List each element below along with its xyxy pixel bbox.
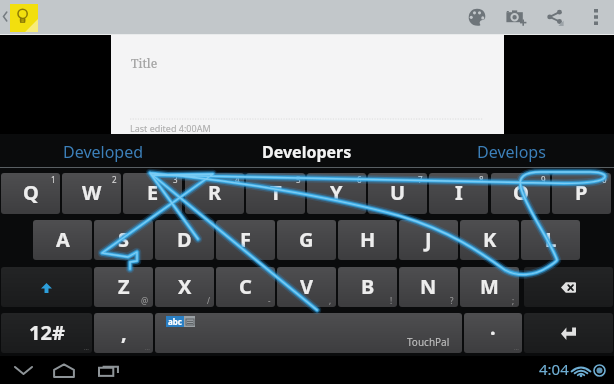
button[interactable]: H xyxy=(338,220,397,260)
staticText: ; xyxy=(512,295,515,306)
staticText: 6 xyxy=(357,174,362,185)
staticText: X xyxy=(178,273,192,300)
button[interactable]: M xyxy=(460,267,519,307)
staticText: D xyxy=(177,226,192,253)
button[interactable]: F xyxy=(216,220,275,260)
staticText: O xyxy=(513,179,529,206)
button[interactable]: B xyxy=(338,267,397,307)
staticText: abc xyxy=(168,316,182,327)
staticText: 4 xyxy=(235,174,240,185)
button[interactable]: More options xyxy=(582,0,610,33)
staticText: Developed xyxy=(63,141,144,163)
staticText: 3 xyxy=(173,174,178,185)
button[interactable]: J xyxy=(399,220,458,260)
staticText: L xyxy=(545,226,557,253)
button[interactable]: Developed xyxy=(3,134,203,167)
button[interactable]: space xyxy=(155,313,462,353)
button[interactable]: Q xyxy=(1,173,60,214)
button[interactable]: R xyxy=(185,173,244,214)
button[interactable]: A xyxy=(33,220,92,260)
staticText: R xyxy=(208,179,222,206)
staticText: ··· xyxy=(84,345,89,353)
button[interactable]: Hide keyboard xyxy=(6,356,40,384)
button[interactable]: Change color xyxy=(461,0,493,33)
button[interactable]: Navigate up xyxy=(0,0,10,33)
staticText: 4:04 xyxy=(539,359,569,379)
button[interactable]: O xyxy=(491,173,550,214)
button[interactable]: W xyxy=(62,173,121,214)
staticText: 7 xyxy=(418,174,423,185)
button[interactable]: Recent apps xyxy=(91,356,125,384)
button[interactable]: enter xyxy=(524,313,613,353)
staticText: , xyxy=(121,319,127,346)
staticText: H xyxy=(360,226,376,253)
button[interactable]: L xyxy=(521,220,580,260)
staticText: Q xyxy=(23,179,39,206)
button[interactable]: U xyxy=(368,173,427,214)
staticText: K xyxy=(483,226,497,253)
staticText: 1 xyxy=(51,174,56,185)
button[interactable]: D xyxy=(155,220,214,260)
staticText: V xyxy=(300,273,313,300)
staticText: F xyxy=(240,226,251,253)
button[interactable]: N xyxy=(399,267,458,307)
staticText: Z xyxy=(118,273,130,300)
button[interactable]: G xyxy=(277,220,336,260)
button[interactable]: Y xyxy=(307,173,366,214)
staticText: 0 xyxy=(602,174,607,185)
button[interactable]: 12# xyxy=(1,313,92,353)
staticText: U xyxy=(390,179,406,206)
staticText: T xyxy=(270,179,282,206)
staticText: N xyxy=(420,273,437,300)
button[interactable]: V xyxy=(277,267,336,307)
button[interactable]: E xyxy=(123,173,182,214)
staticText: C xyxy=(239,273,252,300)
button[interactable]: Share xyxy=(538,0,570,33)
staticText: Last edited 4:00AM xyxy=(130,122,211,134)
staticText: W xyxy=(82,179,102,206)
button[interactable]: Z xyxy=(94,267,153,307)
staticText: ··· xyxy=(145,345,150,353)
button[interactable]: Developers xyxy=(207,134,406,167)
staticText: J xyxy=(425,226,432,253)
button[interactable]: T xyxy=(246,173,305,214)
staticText: G xyxy=(299,226,314,253)
staticText: M xyxy=(480,273,499,300)
button[interactable]: back xyxy=(524,267,613,307)
button[interactable]: X xyxy=(155,267,214,307)
button[interactable]: Keep xyxy=(10,4,38,32)
staticText: / xyxy=(207,295,210,306)
button[interactable]: Add photo xyxy=(500,0,532,33)
staticText: TouchPal xyxy=(407,335,450,349)
button[interactable]: K xyxy=(460,220,519,260)
staticText: , xyxy=(329,295,332,306)
staticText: B xyxy=(361,273,375,300)
staticText: 8 xyxy=(479,174,484,185)
staticText: P xyxy=(575,179,588,206)
button[interactable]: S xyxy=(94,220,153,260)
staticText: Title xyxy=(131,55,158,71)
staticText: 2 xyxy=(112,174,117,185)
button[interactable]: Home xyxy=(47,356,81,384)
staticText: Developers xyxy=(262,141,352,163)
staticText: Develops xyxy=(477,141,546,163)
staticText: Y xyxy=(330,179,343,206)
staticText: 12# xyxy=(29,319,65,346)
staticText: - xyxy=(268,295,271,306)
button[interactable]: I xyxy=(429,173,488,214)
staticText: · xyxy=(490,319,496,346)
staticText: ? xyxy=(450,295,454,306)
button[interactable]: , xyxy=(94,313,153,353)
button[interactable]: C xyxy=(216,267,275,307)
button[interactable]: Develops xyxy=(411,134,611,167)
button[interactable]: P xyxy=(552,173,611,214)
staticText: ··· xyxy=(514,345,519,353)
staticText: @ xyxy=(141,295,149,306)
staticText: I xyxy=(455,179,463,206)
staticText: 9 xyxy=(541,174,546,185)
button[interactable]: · xyxy=(464,313,522,353)
staticText: A xyxy=(56,226,70,253)
button[interactable]: Title xyxy=(111,35,504,135)
staticText: E xyxy=(147,179,159,206)
button[interactable]: shift xyxy=(1,267,92,307)
